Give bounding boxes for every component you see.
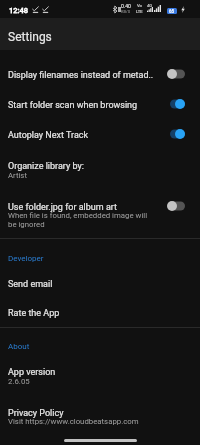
staticText: About bbox=[8, 342, 30, 351]
button[interactable] bbox=[0, 268, 200, 296]
staticText: KB/S bbox=[121, 9, 131, 14]
staticText: Use folder.jpg for album art bbox=[8, 202, 118, 213]
staticText: Display filenames instead of metad.. bbox=[8, 70, 154, 81]
staticText: 12:48 bbox=[9, 6, 29, 15]
staticText: Visit https://www.cloudbeatsapp.com bbox=[8, 417, 168, 426]
other: Switch on bbox=[167, 129, 185, 139]
staticText: 0.40 bbox=[121, 3, 131, 9]
staticText: Artist bbox=[8, 171, 168, 180]
button[interactable] bbox=[0, 86, 200, 116]
staticText: Start folder scan when browsing bbox=[8, 100, 138, 111]
staticText: Privacy Policy bbox=[8, 408, 64, 419]
staticText: 2.6.05 bbox=[8, 377, 168, 386]
staticText: App version bbox=[8, 367, 56, 378]
staticText: Settings bbox=[8, 30, 52, 44]
button[interactable] bbox=[0, 116, 200, 147]
staticText: 65 bbox=[169, 9, 175, 14]
staticText: Developer bbox=[8, 254, 44, 263]
other: Switch on bbox=[167, 99, 185, 109]
staticText: LTE bbox=[136, 9, 143, 14]
staticText: Vo bbox=[137, 3, 142, 8]
staticText: Autoplay Next Track bbox=[8, 130, 89, 141]
button[interactable] bbox=[0, 296, 200, 327]
button[interactable] bbox=[0, 188, 200, 238]
button[interactable] bbox=[0, 50, 200, 86]
button[interactable] bbox=[0, 147, 200, 188]
staticText: Send email bbox=[8, 279, 53, 290]
button[interactable] bbox=[0, 356, 200, 397]
button[interactable] bbox=[0, 397, 200, 434]
staticText: When file is found, embedded image will … bbox=[8, 211, 151, 229]
staticText: Organize library by: bbox=[8, 161, 84, 172]
other: Switch off bbox=[167, 69, 185, 79]
other: Switch off bbox=[167, 201, 185, 211]
staticText: Rate the App bbox=[8, 308, 60, 319]
staticText: 4G bbox=[147, 3, 153, 8]
